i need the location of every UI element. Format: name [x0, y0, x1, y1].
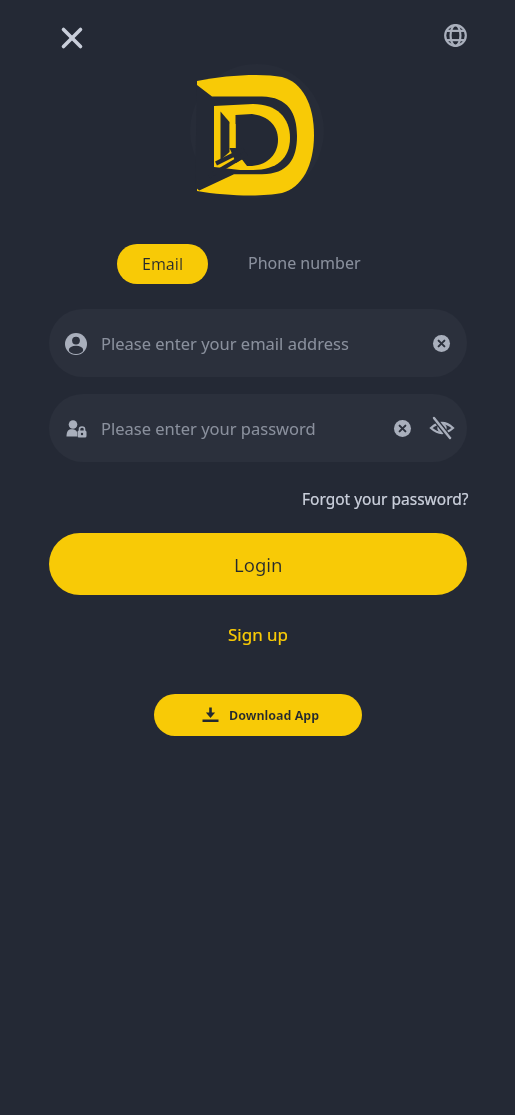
staticText: Sign up	[228, 623, 289, 646]
staticText: Login	[234, 552, 283, 577]
button[interactable]: Forgot your password?	[296, 484, 474, 512]
button[interactable]: Email	[117, 244, 208, 284]
button[interactable]: Download App	[154, 694, 362, 736]
button[interactable]: Login	[49, 533, 467, 595]
staticText: Phone number	[248, 252, 361, 274]
staticText: Download App	[229, 707, 320, 724]
button[interactable]	[54, 20, 90, 56]
staticText: Email	[142, 253, 184, 275]
button[interactable]: Please enter your password	[49, 394, 467, 462]
button[interactable]	[437, 17, 473, 53]
staticText: Forgot your password?	[302, 488, 469, 509]
button[interactable]: Phone number	[236, 243, 372, 283]
staticText: Please enter your password	[101, 417, 316, 439]
button[interactable]: Please enter your email address	[49, 309, 467, 377]
staticText: Please enter your email address	[101, 332, 349, 354]
button[interactable]: Sign up	[214, 618, 302, 650]
